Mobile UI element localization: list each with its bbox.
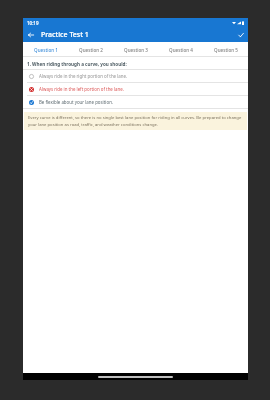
button[interactable]: Question 3 <box>113 42 158 57</box>
button[interactable]: Always ride in the left portion of the l… <box>23 83 248 95</box>
staticText: Question 4 <box>169 47 193 53</box>
button[interactable]: Always ride in the right portion of the … <box>23 70 248 82</box>
staticText: Question 1 <box>34 47 58 53</box>
button[interactable]: Submit <box>233 27 248 42</box>
staticText: Always ride in the left portion of the l… <box>39 86 124 92</box>
button[interactable]: Back <box>23 27 38 42</box>
staticText: Always ride in the right portion of the … <box>39 73 128 79</box>
staticText: Practice Test 1 <box>41 30 89 40</box>
staticText: 10:19 <box>27 20 39 26</box>
staticText: Question 5 <box>214 47 238 53</box>
button[interactable]: Question 4 <box>158 42 203 57</box>
staticText: Question 2 <box>79 47 103 53</box>
button[interactable]: Question 2 <box>68 42 113 57</box>
button[interactable]: Be flexible about your lane position. <box>23 96 248 108</box>
button[interactable]: Question 5 <box>203 42 248 57</box>
staticText: 1. When riding through a curve, you shou… <box>27 61 127 67</box>
staticText: Be flexible about your lane position. <box>39 99 114 105</box>
button[interactable]: Question 1 <box>23 42 68 57</box>
staticText: Question 3 <box>124 47 148 53</box>
staticText: Every curve is different, so there is no… <box>28 115 243 127</box>
